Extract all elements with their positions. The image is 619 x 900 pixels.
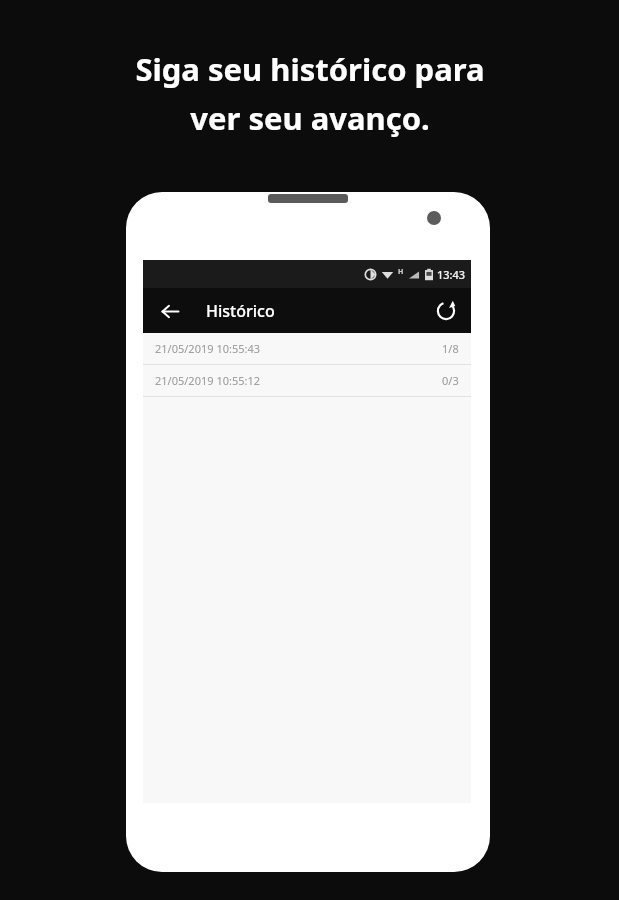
staticText: 21/05/2019 10:55:12 [155, 373, 261, 388]
staticText: Histórico [206, 300, 275, 322]
button[interactable]: 21/05/2019 10:55:43 [143, 333, 471, 364]
staticText: 13:43 [437, 267, 466, 282]
staticText: 1/8 [442, 341, 459, 356]
staticText: H [398, 267, 404, 277]
staticText: 0/3 [442, 373, 459, 388]
staticText: Siga seu histórico para [135, 48, 485, 90]
staticText: ver seu avanço. [190, 97, 430, 139]
button[interactable]: Restore history [429, 294, 463, 328]
staticText: 21/05/2019 10:55:43 [155, 341, 261, 356]
button[interactable]: 21/05/2019 10:55:12 [143, 365, 471, 396]
button[interactable]: Back [153, 294, 187, 328]
